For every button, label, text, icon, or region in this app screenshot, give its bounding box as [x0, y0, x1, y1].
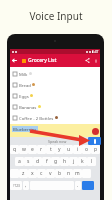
button[interactable]: Bananas [10, 101, 100, 112]
button[interactable]: h [60, 157, 69, 166]
button[interactable]: e [28, 145, 37, 154]
staticText: n [67, 170, 71, 177]
staticText: j [73, 158, 75, 165]
staticText: b [58, 170, 62, 177]
button[interactable]: f [42, 157, 51, 166]
button[interactable]: z [19, 169, 28, 178]
button[interactable]: k [78, 157, 87, 166]
staticText: 5:47 [92, 50, 99, 54]
button[interactable]: t [46, 145, 55, 154]
staticText: i [77, 146, 79, 153]
staticText: m [75, 170, 80, 177]
staticText: Milk [19, 71, 28, 77]
button[interactable]: u [64, 145, 73, 154]
button[interactable]: s [24, 157, 33, 166]
button[interactable]: n [64, 169, 73, 178]
staticText: g [54, 158, 58, 165]
staticText: Eggs [19, 93, 29, 99]
staticText: x [31, 170, 34, 177]
button[interactable]: y [55, 145, 64, 154]
staticText: p [94, 146, 98, 153]
staticText: v [49, 170, 52, 177]
staticText: Blueberries [13, 126, 37, 132]
staticText: Voice Input [0, 9, 112, 23]
button[interactable]: p [91, 145, 100, 154]
button[interactable]: r [37, 145, 46, 154]
staticText: . [77, 182, 79, 189]
button[interactable]: b [55, 169, 64, 178]
staticText: d [36, 158, 40, 165]
staticText: u [67, 146, 71, 153]
staticText: r [40, 146, 43, 153]
staticText: y [58, 146, 61, 153]
staticText: o [85, 146, 89, 153]
button[interactable]: Voice input [88, 137, 101, 145]
button[interactable]: . [75, 181, 81, 190]
staticText: s [27, 158, 30, 165]
staticText: z [22, 170, 25, 177]
button[interactable]: More options [93, 58, 99, 64]
staticText: l [91, 158, 93, 165]
button[interactable]: , [23, 181, 29, 190]
staticText: c [40, 170, 43, 177]
staticText: Speak now [48, 139, 67, 144]
staticText: Coffee - 2 Bottles [19, 115, 54, 121]
staticText: , [25, 182, 27, 189]
button[interactable]: Bread [10, 79, 100, 90]
button[interactable]: Share [84, 57, 91, 64]
button[interactable]: Milk [10, 68, 100, 79]
button[interactable]: v [46, 169, 55, 178]
button[interactable]: Add item [92, 128, 99, 135]
button[interactable]: o [82, 145, 91, 154]
button[interactable]: g [51, 157, 60, 166]
button[interactable]: Enter [82, 181, 94, 190]
button[interactable]: a [15, 157, 24, 166]
staticText: Bread [19, 82, 31, 88]
staticText: q [13, 146, 17, 153]
button[interactable]: x [28, 169, 37, 178]
button[interactable]: q [10, 145, 19, 154]
button[interactable]: ?123 [10, 181, 22, 190]
staticText: k [81, 158, 84, 165]
button[interactable]: c [37, 169, 46, 178]
staticText: a [18, 158, 21, 165]
button[interactable]: m [73, 169, 82, 178]
staticText: w [22, 146, 26, 153]
button[interactable]: l [87, 157, 96, 166]
button[interactable]: i [73, 145, 82, 154]
staticText: ?123 [13, 184, 20, 188]
button[interactable]: w [19, 145, 28, 154]
staticText: e [31, 146, 34, 153]
button[interactable]: j [69, 157, 78, 166]
staticText: h [63, 158, 67, 165]
button[interactable]: Back [11, 57, 18, 64]
button[interactable]: Eggs [10, 90, 100, 101]
staticText: Bananas [19, 104, 37, 110]
staticText: t [50, 146, 52, 153]
staticText: Grocery List [28, 57, 57, 64]
button[interactable]: d [33, 157, 42, 166]
staticText: f [46, 158, 48, 165]
button[interactable]: Coffee - 2 Bottles [10, 112, 100, 123]
